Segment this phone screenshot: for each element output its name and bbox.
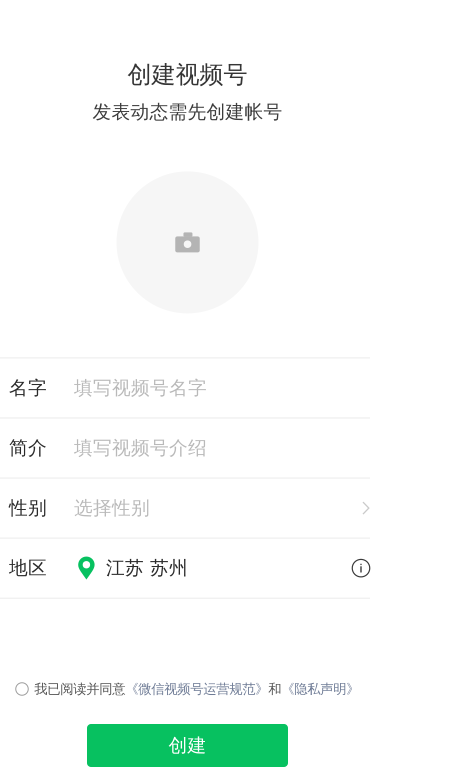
staticText: 江苏 苏州 xyxy=(106,557,188,580)
staticText: 填写视频号名字 xyxy=(74,376,207,399)
staticText: 填写视频号介绍 xyxy=(74,436,207,459)
button[interactable]: 性别 xyxy=(0,478,375,538)
staticText: 创建 xyxy=(168,734,206,757)
staticText: 《微信视频号运营规范》 xyxy=(125,681,268,697)
staticText: 选择性别 xyxy=(74,497,150,519)
button[interactable]: 《微信视频号运营规范》 xyxy=(125,681,268,697)
staticText: 我已阅读并同意 xyxy=(34,681,125,697)
staticText: 发表动态需先创建帐号 xyxy=(92,100,282,123)
staticText: 名字 xyxy=(9,376,47,399)
staticText: 性别 xyxy=(9,497,47,519)
button[interactable]: Choose avatar xyxy=(116,171,258,313)
button[interactable]: 创建 xyxy=(87,724,288,767)
button[interactable]: 地区 xyxy=(0,539,375,598)
staticText: 简介 xyxy=(9,436,47,459)
button[interactable]: 《隐私声明》 xyxy=(281,681,359,697)
button[interactable]: 简介 xyxy=(0,418,375,478)
staticText: 地区 xyxy=(9,557,47,580)
button[interactable]: 我已阅读并同意 xyxy=(16,681,125,697)
button[interactable]: 名字 xyxy=(0,358,375,417)
staticText: 创建视频号 xyxy=(127,60,247,89)
staticText: 和 xyxy=(268,681,281,697)
staticText: 《隐私声明》 xyxy=(281,681,359,697)
